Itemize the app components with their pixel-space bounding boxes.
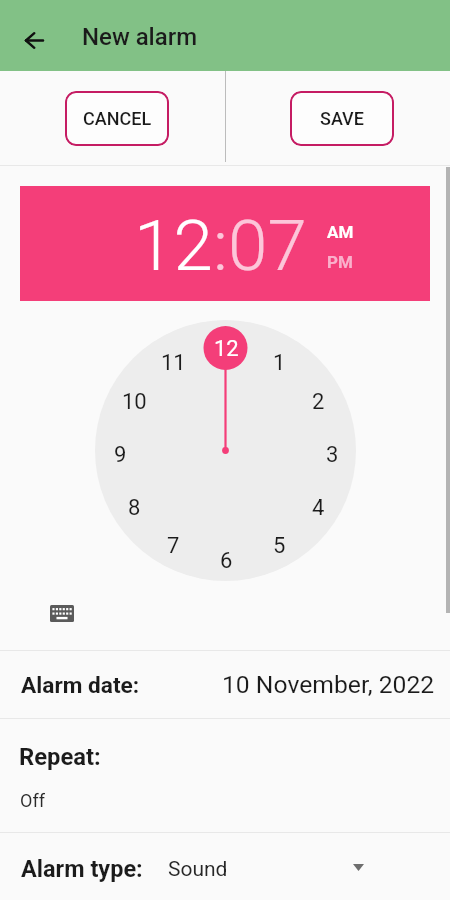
- button[interactable]: Navigate up: [10, 16, 58, 64]
- staticText: 5: [273, 533, 286, 559]
- staticText: 4: [312, 495, 325, 521]
- staticText: Alarm date:: [21, 672, 140, 699]
- button[interactable]: Repeat:: [0, 719, 450, 832]
- button[interactable]: Alarm type:: [0, 833, 450, 900]
- staticText: 2: [312, 389, 325, 415]
- staticText: 6: [220, 548, 233, 574]
- staticText: Off: [20, 790, 45, 811]
- staticText: :: [213, 204, 228, 287]
- staticText: 10: [122, 389, 147, 415]
- staticText: Alarm type:: [21, 855, 143, 883]
- staticText: SAVE: [320, 108, 364, 129]
- staticText: Sound: [168, 857, 228, 882]
- button[interactable]: SAVE: [290, 91, 394, 146]
- button[interactable]: CANCEL: [65, 91, 169, 146]
- staticText: New alarm: [82, 23, 198, 51]
- staticText: 9: [114, 442, 127, 468]
- staticText: 7: [167, 533, 180, 559]
- staticText: Repeat:: [19, 743, 101, 771]
- staticText: 12: [214, 336, 239, 362]
- staticText: 8: [128, 495, 141, 521]
- staticText: 12: [134, 204, 213, 287]
- button[interactable]: Alarm date:: [0, 651, 450, 718]
- staticText: 11: [161, 350, 186, 376]
- staticText: PM: [327, 252, 353, 272]
- staticText: AM: [327, 222, 354, 242]
- staticText: 1: [273, 350, 286, 376]
- staticText: 10 November, 2022: [222, 670, 435, 699]
- button[interactable]: Switch to keyboard input: [39, 591, 84, 636]
- staticText: 3: [326, 442, 339, 468]
- staticText: CANCEL: [83, 108, 152, 129]
- button[interactable]: 12: [20, 186, 430, 301]
- staticText: 07: [228, 204, 307, 287]
